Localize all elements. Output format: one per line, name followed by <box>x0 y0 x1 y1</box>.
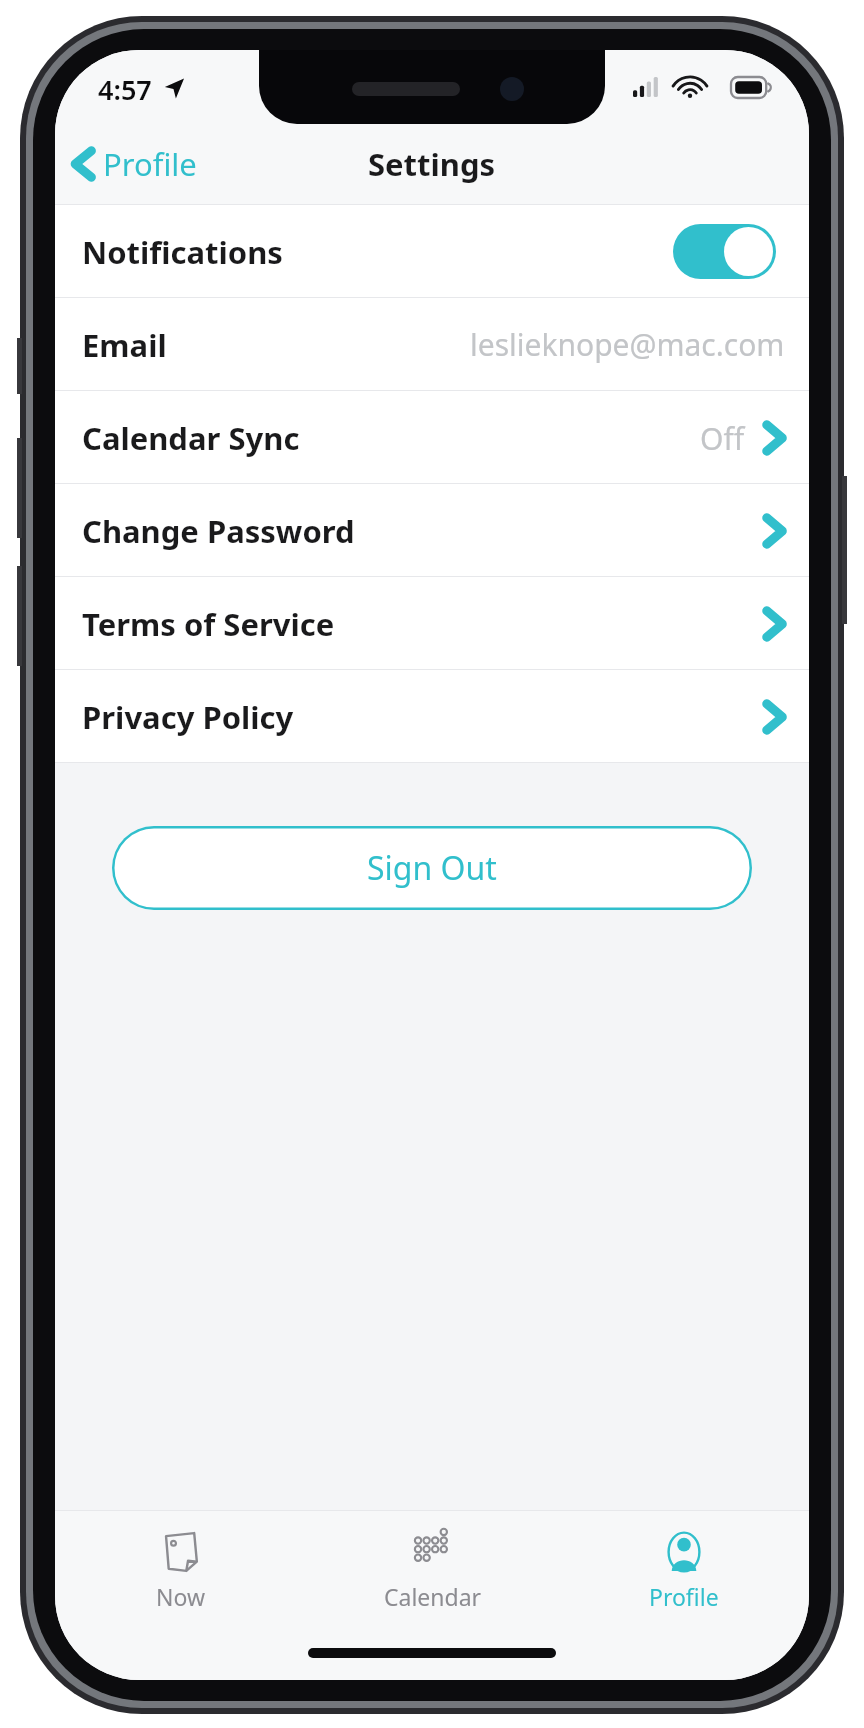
button[interactable]: Sign Out <box>112 826 752 910</box>
staticText: 4:57 <box>98 71 152 108</box>
button[interactable]: Privacy Policy <box>55 670 809 763</box>
staticText: Now <box>156 1581 206 1612</box>
button[interactable]: Calendar <box>307 1522 558 1620</box>
other: Now <box>159 1530 203 1574</box>
button[interactable]: Calendar Sync <box>55 391 809 484</box>
button[interactable]: Profile <box>55 132 213 196</box>
button[interactable]: Now <box>55 1522 307 1620</box>
staticText: Notifications <box>82 231 283 273</box>
other: Calendar <box>411 1530 455 1574</box>
staticText: leslieknope@mac.com <box>470 324 785 365</box>
staticText: Off <box>700 418 745 459</box>
staticText: Calendar Sync <box>82 417 300 459</box>
button[interactable]: Terms of Service <box>55 577 809 670</box>
staticText: Privacy Policy <box>82 696 294 738</box>
staticText: Profile <box>103 143 197 185</box>
button[interactable]: Email <box>55 298 809 391</box>
staticText: Settings <box>368 143 496 185</box>
staticText: Change Password <box>82 510 355 552</box>
staticText: Profile <box>649 1581 719 1612</box>
other: Profile <box>662 1530 706 1574</box>
button[interactable]: Profile <box>558 1522 809 1620</box>
staticText: Sign Out <box>367 846 497 890</box>
button[interactable]: Change Password <box>55 484 809 577</box>
staticText: Email <box>82 324 167 366</box>
staticText: Calendar <box>384 1581 482 1612</box>
button[interactable]: Notifications <box>55 205 809 298</box>
staticText: Terms of Service <box>82 603 335 645</box>
